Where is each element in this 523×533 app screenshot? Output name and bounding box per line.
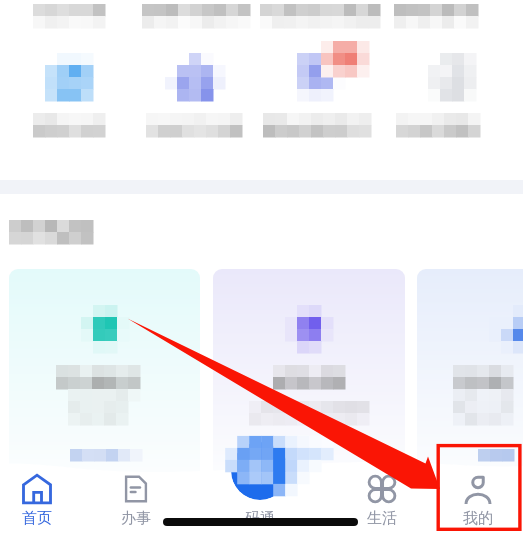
button[interactable]: 码通 [231,442,289,500]
button[interactable]: 办事 [104,470,168,530]
button[interactable]: 首页 [5,470,69,530]
button[interactable]: 生活 [350,470,414,530]
staticText: 我的 [463,509,493,528]
staticText: 码通 [224,509,296,528]
staticText: 首页 [22,509,52,528]
button[interactable]: 我的 [446,470,510,530]
staticText: 生活 [367,509,397,528]
staticText: 办事 [121,509,151,528]
